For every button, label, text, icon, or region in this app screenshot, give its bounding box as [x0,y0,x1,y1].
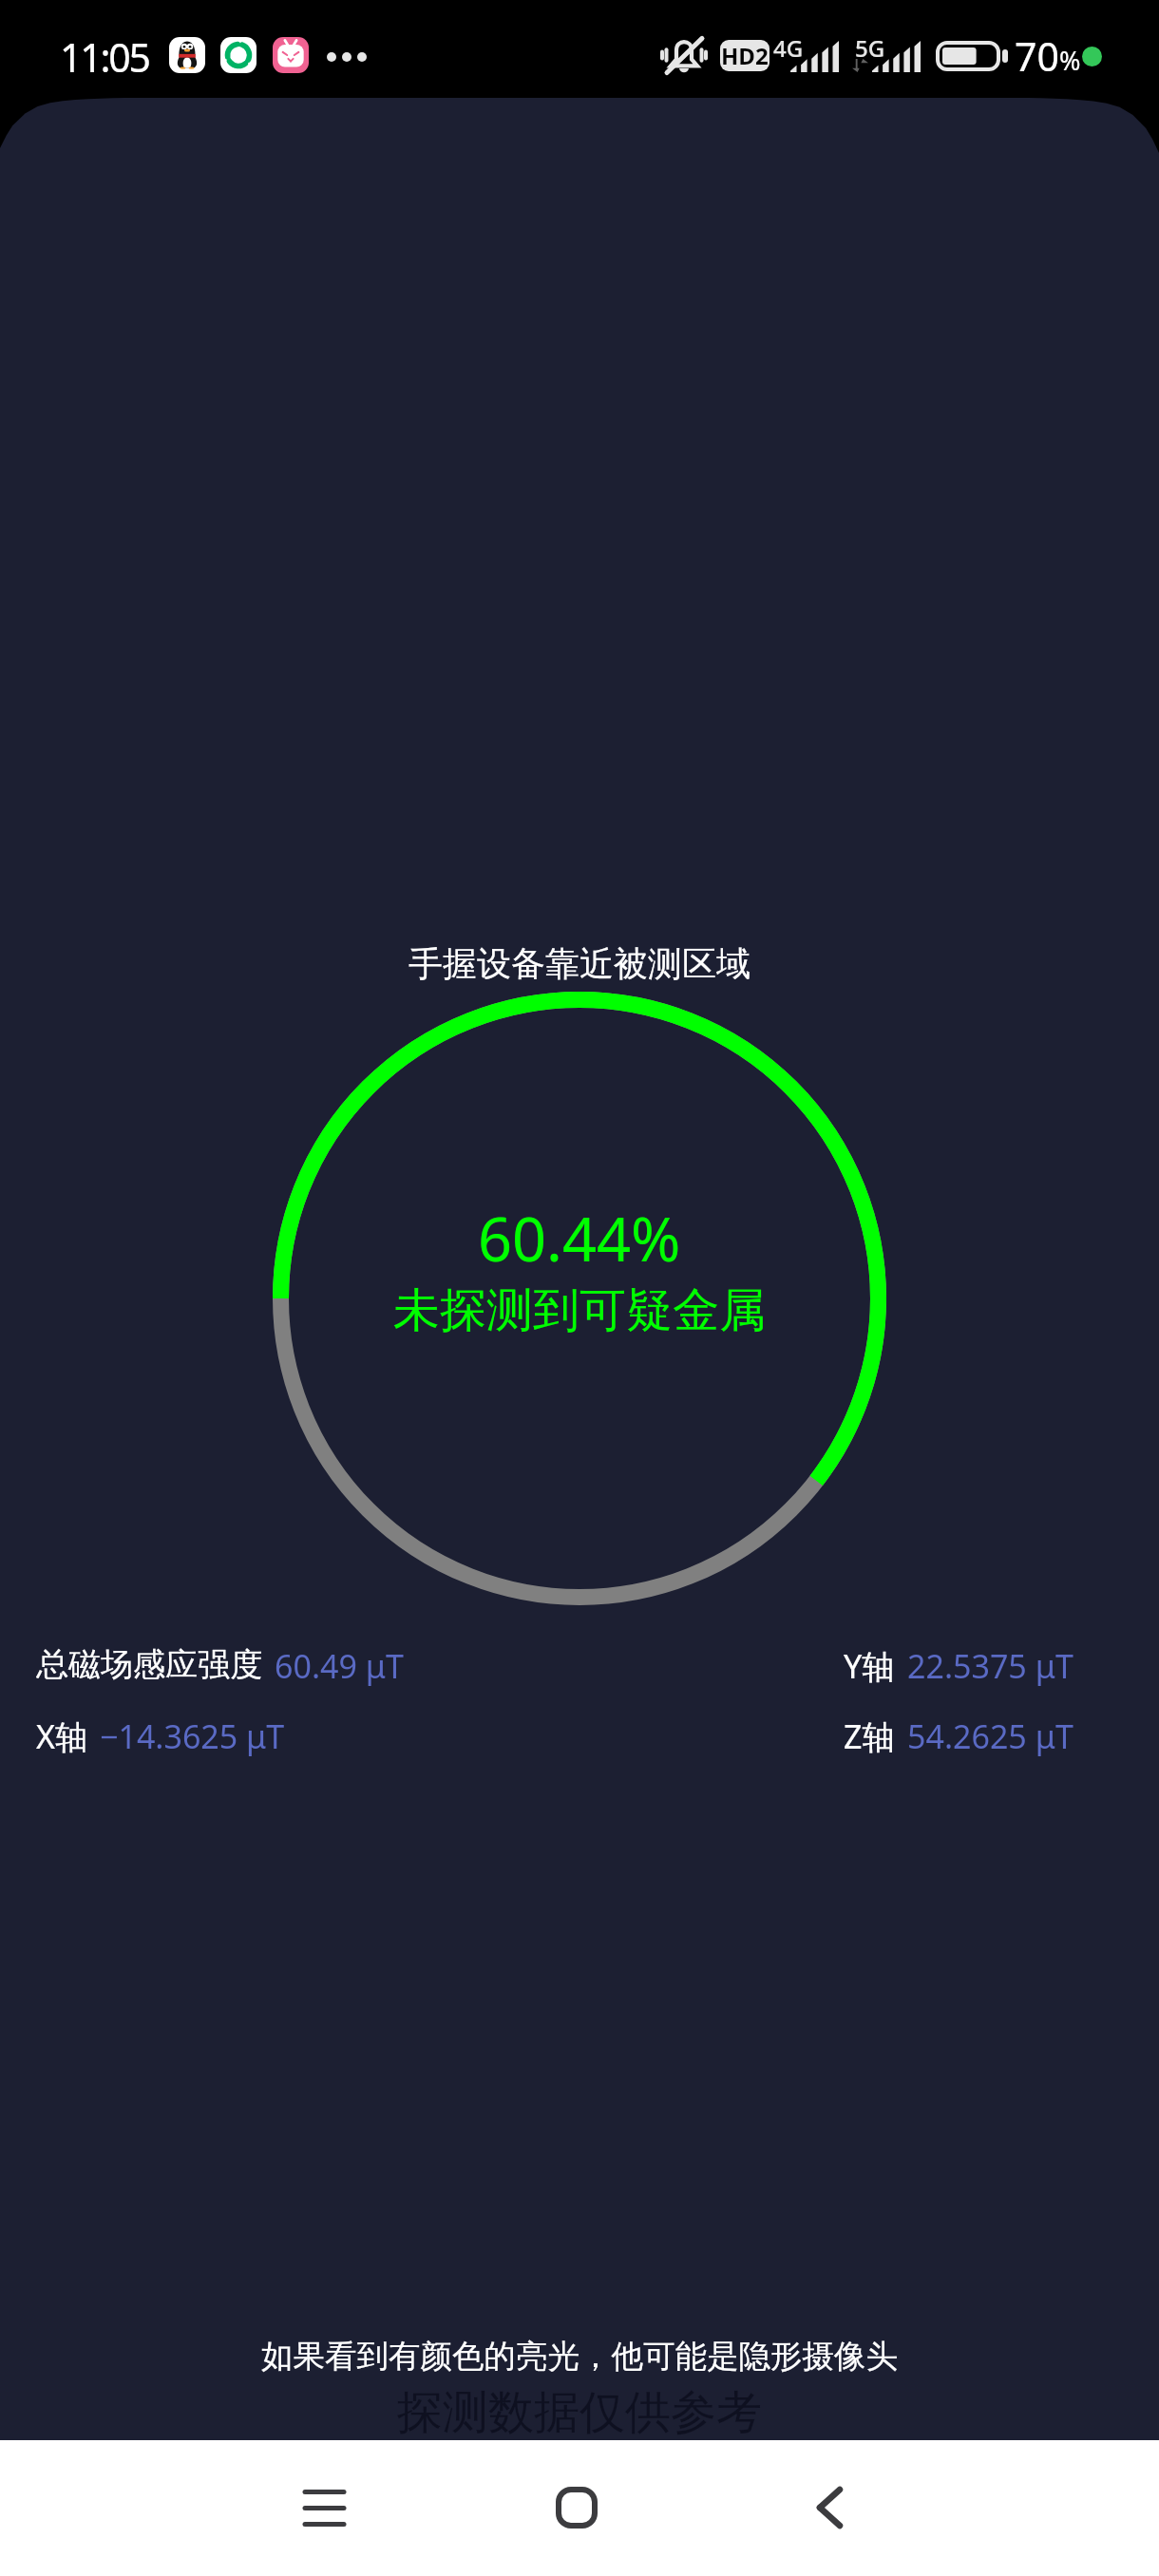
staticText: X轴 [36,1714,87,1758]
staticText: Z轴 [844,1714,895,1758]
staticText: −14.3625 μT [100,1714,285,1758]
button[interactable]: Home [520,2451,634,2565]
staticText: 总磁场感应强度 [36,1644,262,1685]
staticText: % [1059,43,1081,78]
staticText: 手握设备靠近被测区域 [408,942,750,985]
staticText: 如果看到有颜色的亮光，他可能是隐形摄像头 [261,2337,898,2377]
button[interactable]: Back [772,2451,886,2565]
staticText: 54.2625 μT [907,1714,1073,1758]
button[interactable]: Recents [267,2451,381,2565]
staticText: 11:05 [60,30,149,84]
staticText: HD2 [721,40,769,71]
staticText: 60.44% [478,1198,681,1279]
staticText: 22.5375 μT [907,1644,1073,1688]
staticText: 4G [773,32,804,64]
staticText: 未探测到可疑金属 [393,1281,766,1340]
staticText: 70 [1015,29,1059,83]
staticText: 60.49 μT [275,1644,404,1688]
staticText: 5G [855,32,885,64]
staticText: 探测数据仅供参考 [397,2384,762,2441]
staticText: Y轴 [844,1644,895,1688]
